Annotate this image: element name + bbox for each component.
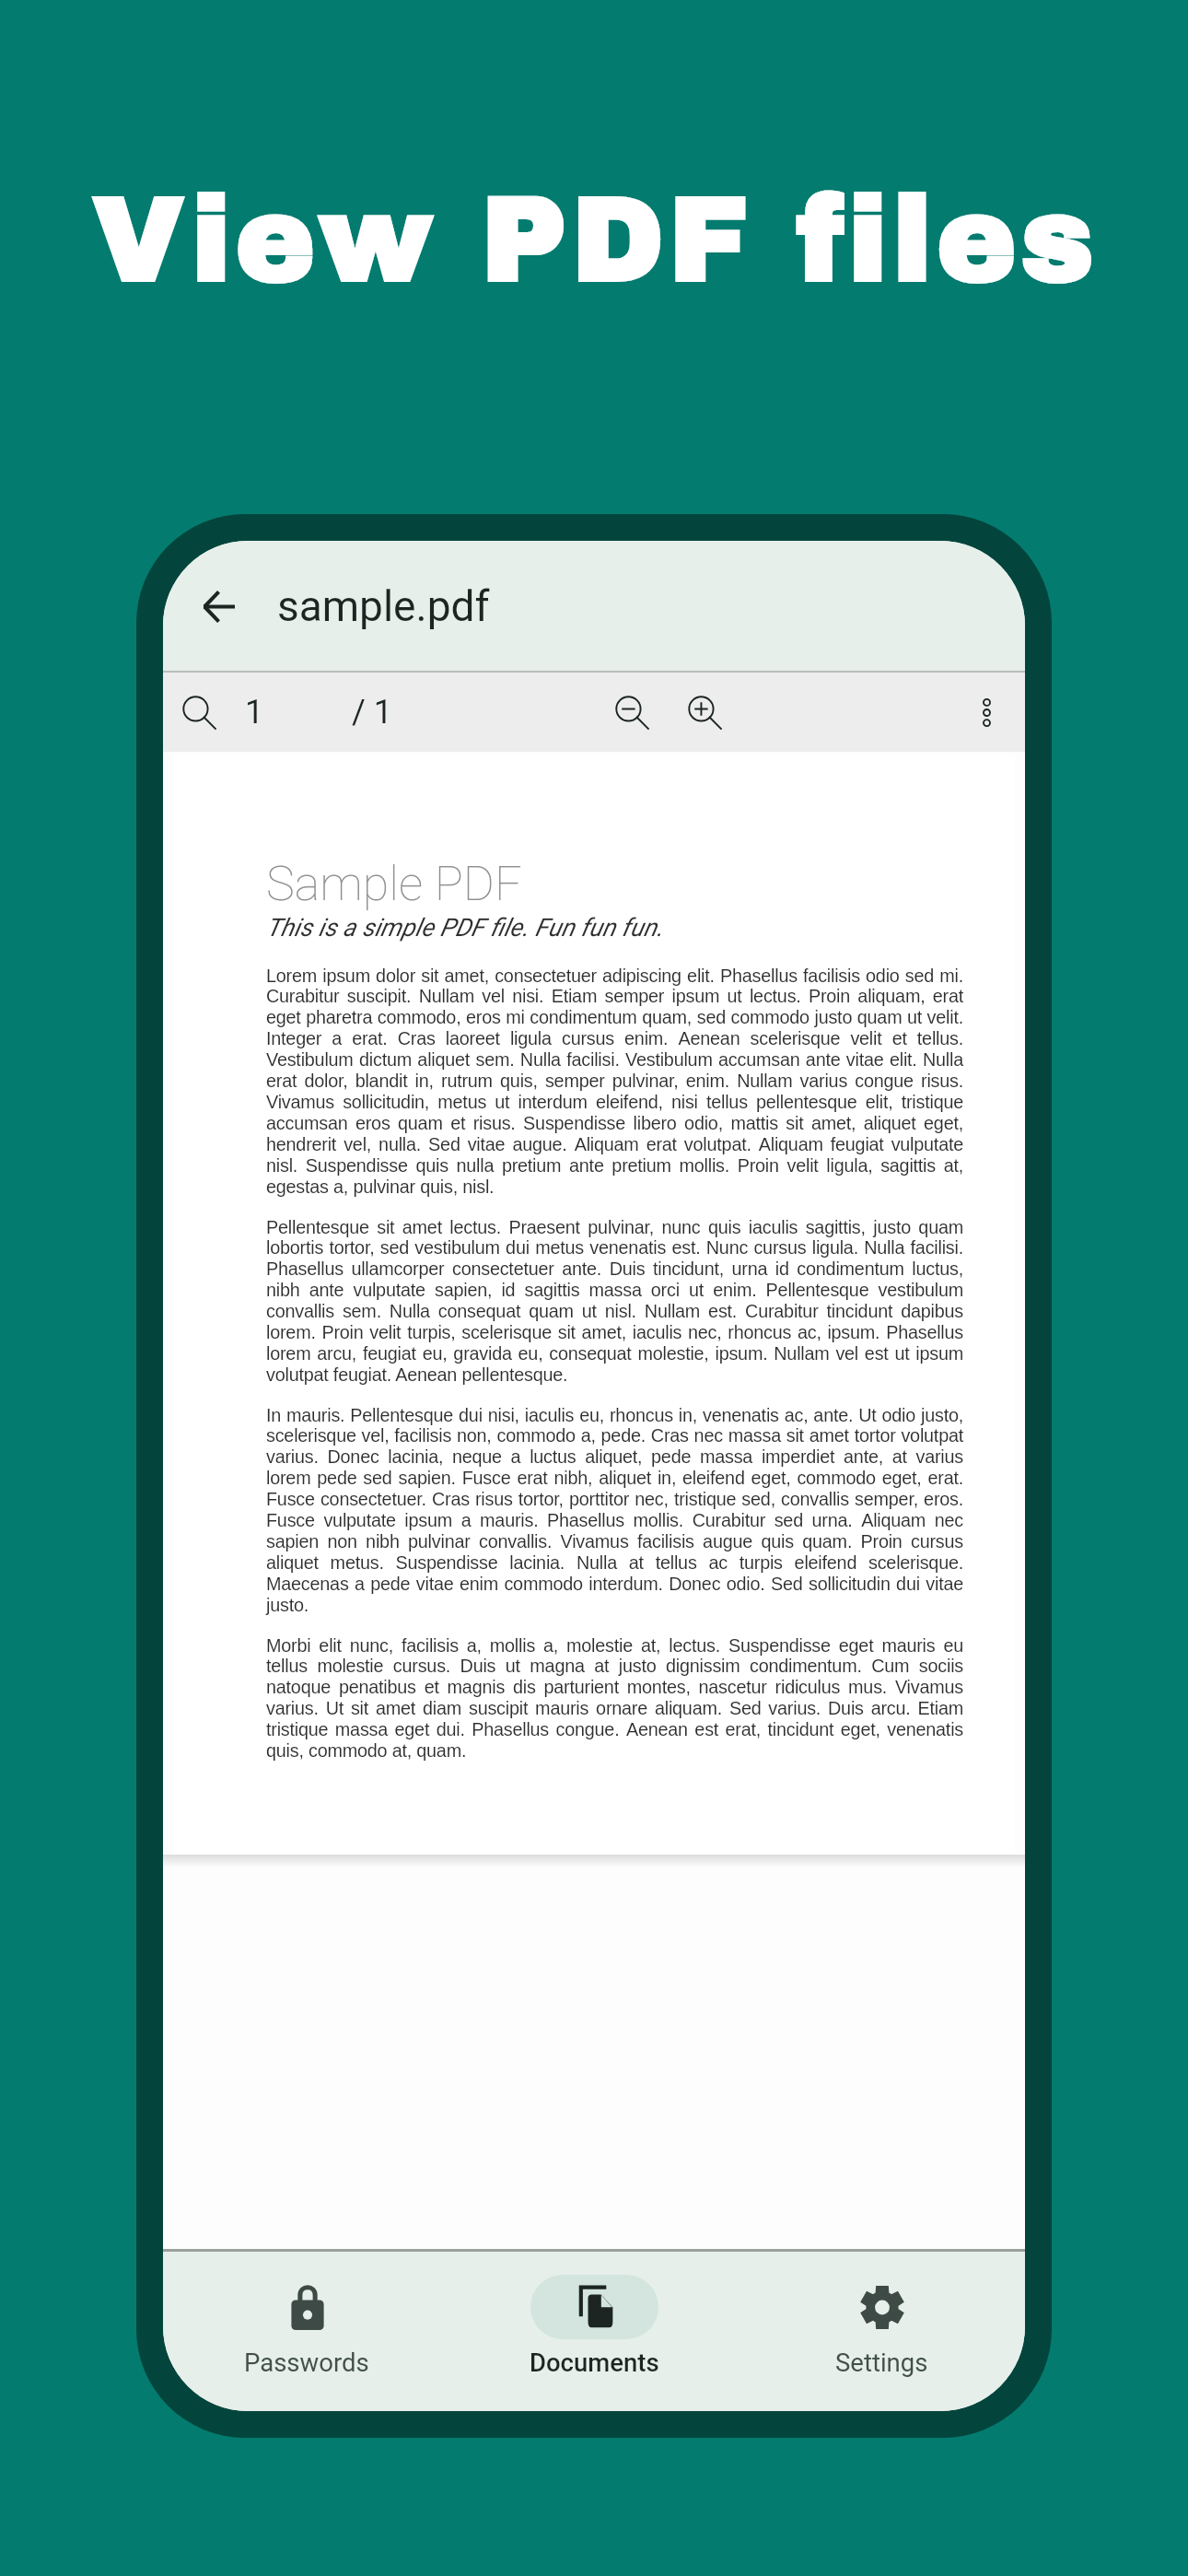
button[interactable]: Search: [170, 673, 227, 752]
staticText: Sample PDF: [266, 856, 522, 912]
button[interactable]: Settings: [738, 2252, 1025, 2411]
button[interactable]: Back: [187, 575, 250, 638]
button[interactable]: Passwords: [163, 2252, 450, 2411]
staticText: 1: [245, 693, 264, 732]
button[interactable]: Zoom out: [603, 673, 660, 752]
staticText: Passwords: [244, 2348, 369, 2377]
staticText: Lorem ipsum dolor sit amet, consectetuer…: [266, 966, 963, 1198]
staticText: / 1: [352, 693, 393, 732]
staticText: Documents: [530, 2348, 659, 2377]
button[interactable]: More options: [958, 673, 1015, 752]
staticText: Settings: [835, 2348, 928, 2377]
staticText: Morbi elit nunc, facilisis a, mollis a, …: [266, 1635, 963, 1762]
staticText: In mauris. Pellentesque dui nisi, iaculi…: [266, 1405, 963, 1616]
staticText: View PDF files: [92, 176, 1099, 305]
staticText: sample.pdf: [277, 581, 490, 631]
button[interactable]: Documents: [450, 2252, 738, 2411]
button[interactable]: Zoom in: [676, 673, 733, 752]
staticText: This is a simple PDF file. Fun fun fun.: [266, 913, 663, 943]
staticText: Pellentesque sit amet lectus. Praesent p…: [266, 1217, 963, 1386]
